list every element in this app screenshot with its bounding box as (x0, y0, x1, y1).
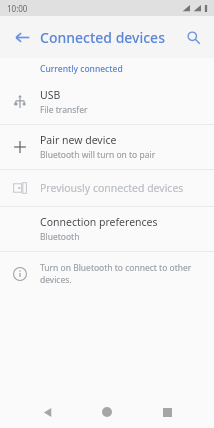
staticText: Bluetooth (40, 231, 80, 243)
button[interactable]: Connection preferences (0, 207, 214, 251)
staticText: Connection preferences (40, 215, 158, 229)
button[interactable]: Search (178, 22, 208, 52)
button[interactable]: Home (94, 399, 120, 425)
button[interactable]: Back (34, 399, 60, 425)
staticText: Currently connected (40, 63, 123, 75)
staticText: File transfer (40, 104, 88, 116)
staticText: Pair new device (40, 133, 117, 147)
button[interactable]: Previously connected devices (0, 170, 214, 206)
button[interactable]: USB (0, 80, 214, 124)
staticText: 10:00 (7, 3, 28, 14)
staticText: Bluetooth will turn on to pair (40, 149, 156, 161)
staticText: Turn on Bluetooth to connect to other de… (40, 262, 196, 286)
staticText: USB (40, 88, 61, 102)
button[interactable]: Recent apps (154, 399, 180, 425)
staticText: Connected devices (40, 28, 165, 47)
button[interactable]: Pair new device (0, 125, 214, 169)
button[interactable]: Back (6, 21, 38, 53)
staticText: Previously connected devices (40, 181, 184, 195)
